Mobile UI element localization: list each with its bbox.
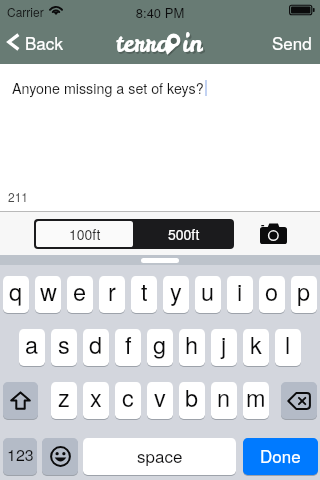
staticText: in (182, 27, 203, 57)
button[interactable]: Back (0, 20, 73, 64)
staticText: Done (260, 443, 301, 467)
staticText: l (285, 329, 291, 361)
staticText: i (237, 276, 243, 308)
button[interactable]: e (67, 276, 93, 313)
staticText: c (122, 382, 134, 414)
staticText: Carrier (7, 3, 44, 20)
button[interactable]: f (115, 329, 141, 366)
staticText: y (170, 276, 182, 308)
staticText: s (58, 329, 70, 361)
button[interactable]: Take photo (252, 213, 294, 253)
staticText: 8:40 PM (0, 3, 320, 22)
staticText: k (250, 329, 262, 361)
button[interactable]: g (147, 329, 173, 366)
staticText: 500ft (168, 224, 200, 244)
staticText: g (153, 329, 167, 361)
button[interactable]: n (211, 382, 237, 419)
staticText: x (90, 382, 102, 414)
button[interactable]: x (83, 382, 109, 419)
staticText: w (40, 276, 57, 308)
button[interactable]: b (179, 382, 205, 419)
staticText: Anyone missing a set of keys? (12, 78, 204, 98)
button[interactable]: space (83, 438, 236, 475)
staticText: b (185, 382, 199, 414)
staticText: j (221, 329, 227, 361)
button[interactable]: j (211, 329, 237, 366)
button[interactable]: o (259, 276, 285, 313)
staticText: terra (116, 27, 171, 57)
button[interactable]: l (275, 329, 301, 366)
staticText: o (265, 276, 279, 308)
staticText: u (201, 276, 215, 308)
staticText: v (154, 382, 166, 414)
button[interactable]: q (3, 276, 29, 313)
staticText: z (58, 382, 70, 414)
staticText: 211 (8, 188, 29, 205)
button[interactable]: h (179, 329, 205, 366)
staticText: terra (117, 29, 172, 59)
button[interactable]: Shift (3, 382, 38, 419)
staticText: d (89, 329, 103, 361)
button[interactable]: w (35, 276, 61, 313)
staticText: q (9, 276, 23, 308)
button[interactable]: p (291, 276, 317, 313)
button[interactable]: s (51, 329, 77, 366)
staticText: a (25, 329, 39, 361)
button[interactable]: 123 (3, 438, 37, 475)
staticText: p (297, 276, 311, 308)
staticText: n (217, 382, 231, 414)
button[interactable]: y (163, 276, 189, 313)
button[interactable]: a (19, 329, 45, 366)
staticText: 123 (7, 443, 34, 466)
button[interactable]: z (51, 382, 77, 419)
button[interactable]: Backspace (281, 382, 317, 419)
button[interactable]: d (83, 329, 109, 366)
staticText: e (73, 276, 87, 308)
staticText: 100ft (69, 224, 101, 244)
button[interactable]: i (227, 276, 253, 313)
staticText: m (246, 382, 266, 414)
button[interactable]: v (147, 382, 173, 419)
button[interactable]: r (99, 276, 125, 313)
staticText: space (137, 443, 183, 467)
button[interactable]: Done (243, 438, 318, 475)
staticText: Back (25, 30, 63, 54)
button[interactable]: t (131, 276, 157, 313)
button[interactable]: k (243, 329, 269, 366)
button[interactable]: c (115, 382, 141, 419)
button[interactable]: 100ft (36, 221, 133, 247)
button[interactable]: m (243, 382, 269, 419)
staticText: h (185, 329, 199, 361)
button[interactable]: u (195, 276, 221, 313)
button[interactable]: 500ft (135, 221, 232, 247)
staticText: t (141, 276, 148, 308)
staticText: in (184, 29, 205, 59)
button[interactable]: Send (260, 20, 320, 64)
staticText: r (108, 276, 116, 308)
button[interactable]: Emoji (42, 438, 78, 475)
staticText: f (125, 329, 132, 361)
staticText: Send (272, 30, 312, 54)
